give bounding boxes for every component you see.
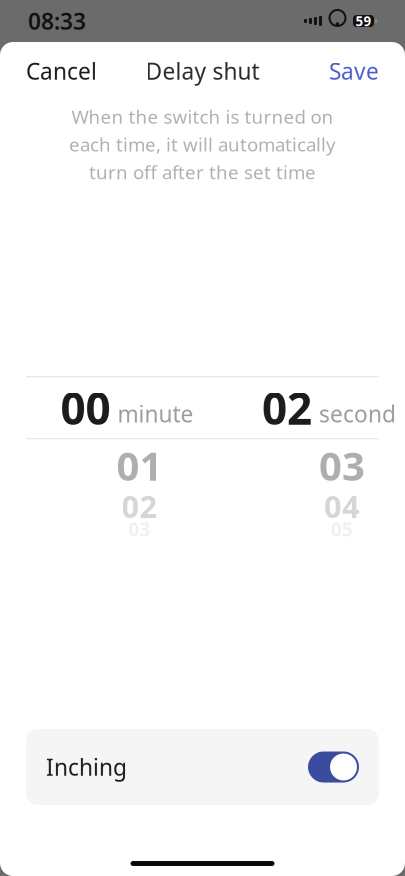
staticText: When the switch is turned on: [71, 104, 333, 129]
staticText: 03: [128, 517, 150, 542]
button[interactable]: Cancel: [14, 48, 109, 94]
staticText: Delay shut: [145, 56, 259, 86]
staticText: 02: [262, 378, 312, 437]
staticText: Inching: [46, 752, 127, 782]
button[interactable]: Inching: [26, 729, 379, 805]
staticText: 08:33: [28, 6, 86, 36]
staticText: 00: [60, 378, 110, 437]
staticText: Save: [329, 56, 379, 86]
staticText: Cancel: [26, 56, 97, 86]
staticText: 03: [319, 439, 365, 492]
staticText: each time, it will automatically: [69, 132, 336, 157]
staticText: turn off after the set time: [89, 160, 316, 184]
staticText: 01: [116, 439, 162, 492]
staticText: 05: [331, 517, 353, 542]
staticText: 59: [355, 12, 371, 30]
button[interactable]: Save: [317, 48, 391, 94]
staticText: 04: [324, 486, 360, 526]
staticText: 02: [121, 486, 157, 526]
staticText: second: [319, 399, 396, 429]
staticText: minute: [117, 399, 193, 429]
